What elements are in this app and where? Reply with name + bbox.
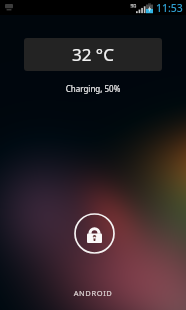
staticText: ANDROID xyxy=(0,288,186,298)
staticText: 32 °C xyxy=(72,43,114,66)
staticText: Charging, 50% xyxy=(0,83,186,94)
button[interactable]: 32 °C xyxy=(24,38,162,71)
button[interactable]: Unlock xyxy=(74,213,115,254)
staticText: 11:53 xyxy=(156,1,183,15)
